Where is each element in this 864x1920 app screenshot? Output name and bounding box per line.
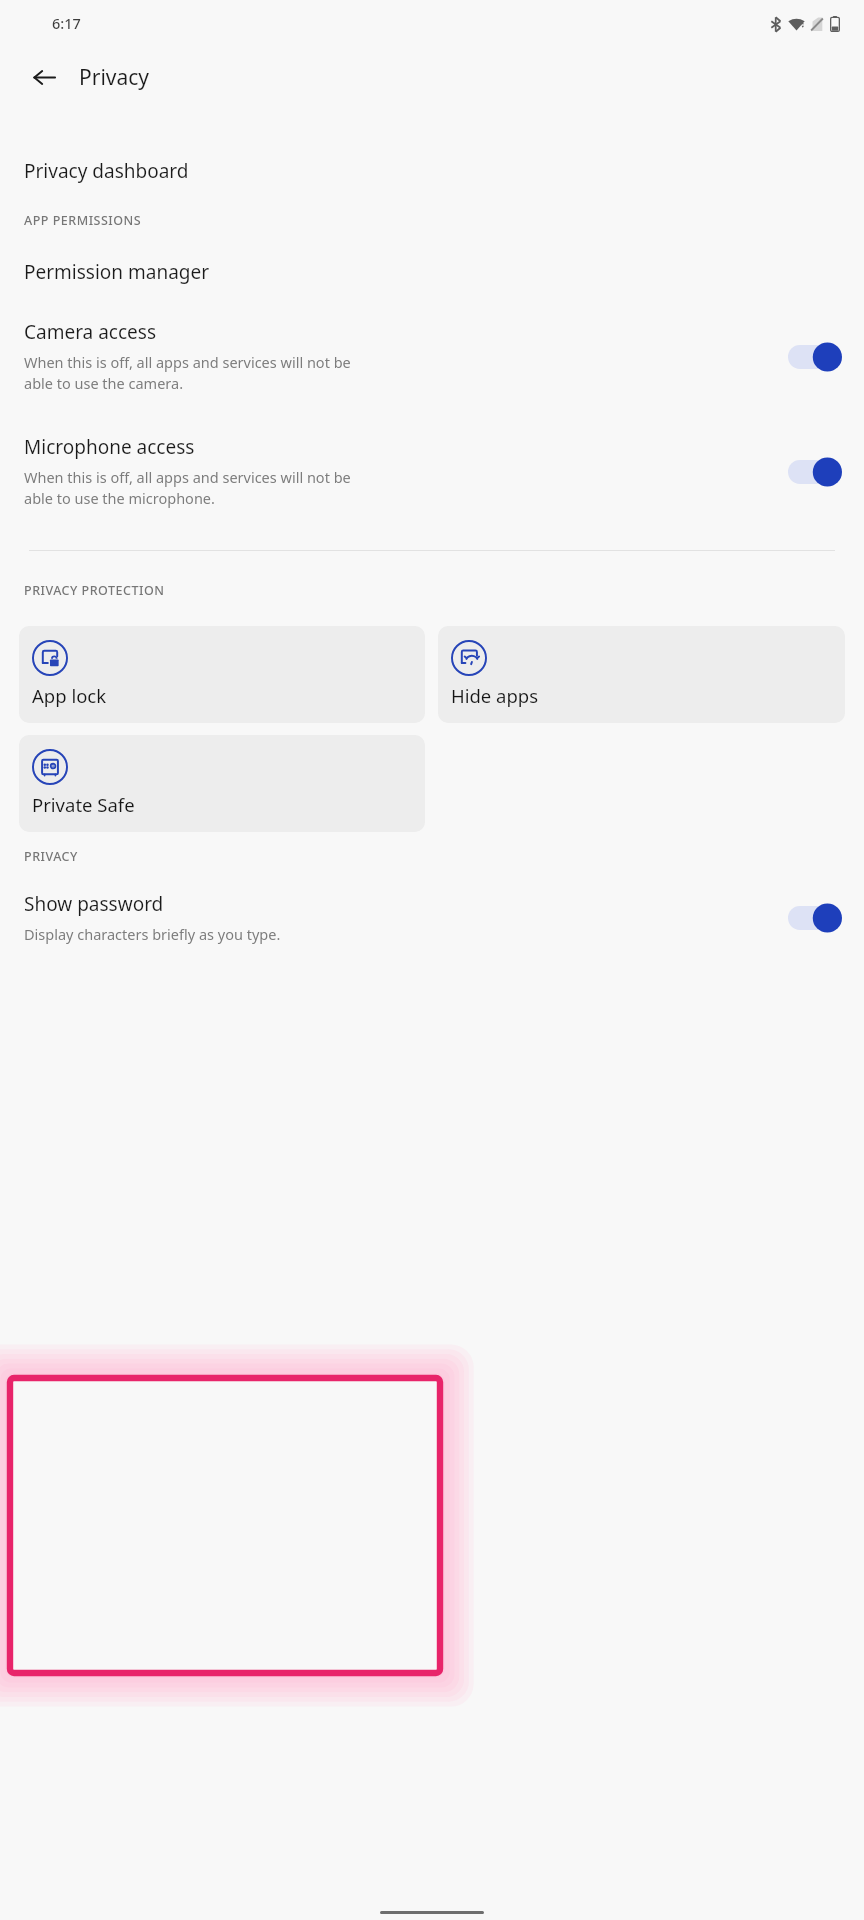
staticText: Camera access [24,319,157,345]
button[interactable]: Permission manager [0,257,864,287]
staticText: Hide apps [451,683,539,708]
staticText: Display characters briefly as you type. [24,924,281,944]
staticText: PRIVACY PROTECTION [24,582,165,599]
button[interactable]: Camera access [0,319,864,394]
staticText: Privacy dashboard [24,158,189,184]
staticText: When this is off, all apps and services … [24,352,351,394]
staticText: PRIVACY [24,848,78,865]
staticText: When this is off, all apps and services … [24,467,351,509]
button[interactable]: Show password [0,891,864,944]
staticText: Microphone access [24,434,195,460]
staticText: Privacy [79,63,150,92]
button[interactable]: Hide apps [438,626,845,723]
staticText: APP PERMISSIONS [24,212,142,229]
button[interactable]: App lock [19,626,425,723]
button[interactable]: Back [20,53,68,101]
staticText: Show password [24,891,164,917]
staticText: App lock [32,683,107,708]
button[interactable]: Private Safe [19,735,425,832]
button[interactable]: Toggle [788,455,842,489]
button[interactable]: Microphone access [0,434,864,509]
staticText: Permission manager [24,259,210,285]
button[interactable]: Toggle [788,340,842,374]
button[interactable]: Privacy dashboard [0,156,864,186]
staticText: Private Safe [32,792,135,817]
button[interactable]: Toggle [788,901,842,935]
staticText: 6:17 [52,13,81,33]
